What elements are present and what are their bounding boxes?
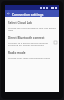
button[interactable]: Select Cloud Lab (5, 19, 59, 34)
button[interactable]: Toggle direct Bluetooth connect (53, 40, 57, 44)
staticText: Choose your radio transmission band (8, 56, 51, 59)
staticText: Select Cloud Lab (8, 21, 32, 25)
staticText: Connect to a device directly without sca… (8, 41, 51, 47)
staticText: Direct Bluetooth connect (8, 36, 45, 40)
button[interactable]: Radio mode (5, 49, 59, 61)
staticText: Radio mode (8, 51, 26, 55)
button[interactable]: Direct Bluetooth connect (5, 34, 59, 49)
staticText: Choose the cloud endpoint that this devi… (8, 26, 57, 32)
button[interactable]: Navigate up (5, 10, 12, 17)
staticText: Connection settings (12, 12, 59, 16)
